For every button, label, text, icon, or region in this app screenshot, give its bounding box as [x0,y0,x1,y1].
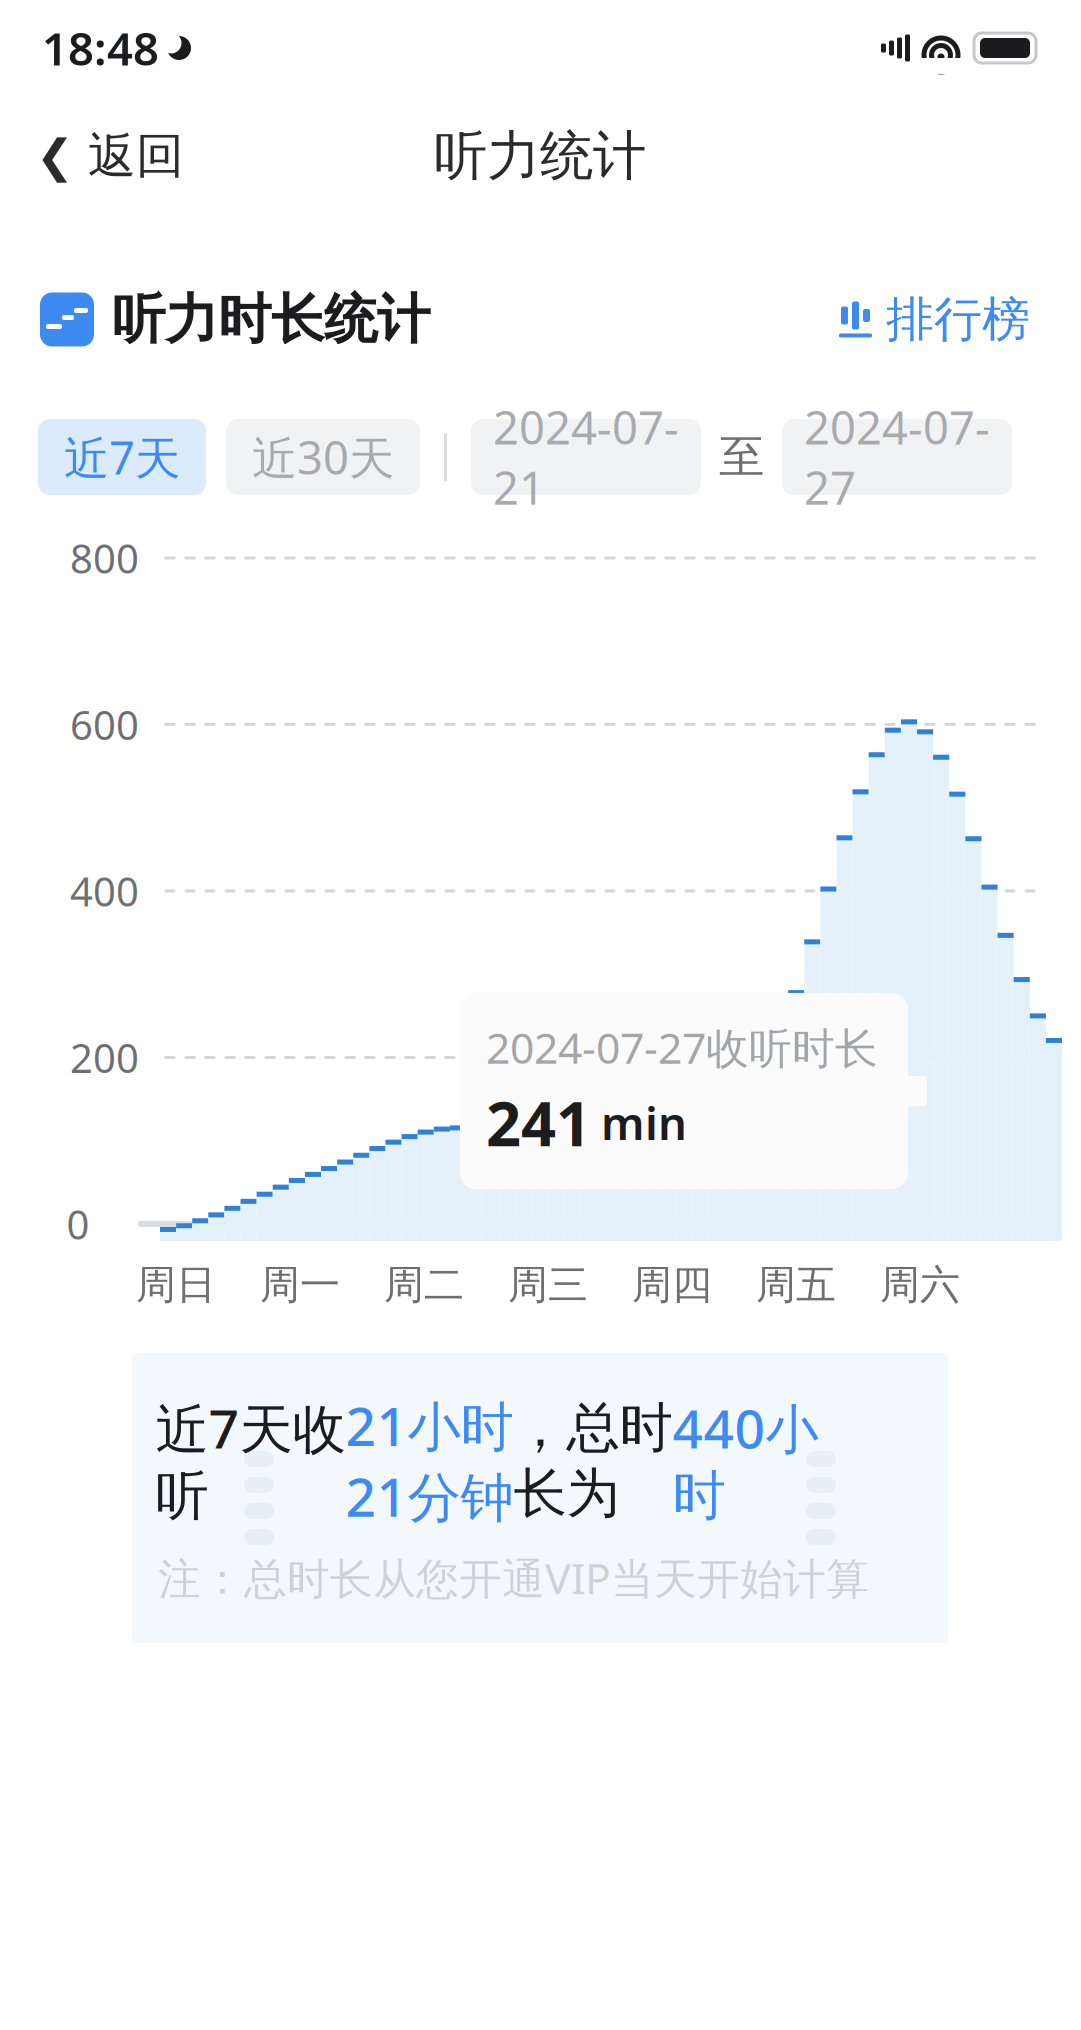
staticText: 440小时 [672,1392,818,1529]
staticText: 200 [70,1031,139,1084]
staticText: 听力时长统计 [112,287,430,352]
staticText: 18:48 [42,18,159,78]
staticText: 2024-07-21 [493,397,679,517]
staticText: 周三 [508,1260,588,1309]
button[interactable]: 近7天 [38,419,206,495]
staticText: 周二 [384,1260,464,1309]
button[interactable]: 近30天 [226,419,420,495]
staticText: 排行榜 [886,290,1030,349]
button[interactable]: 2024-07-21 [471,419,701,495]
staticText: 周六 [880,1260,960,1309]
staticText: min [601,1092,687,1152]
staticText: ❮ [36,130,74,182]
staticText: 周五 [756,1260,836,1309]
button[interactable]: ❮ [12,112,208,199]
staticText: 周日 [136,1260,216,1309]
staticText: 800 [70,531,139,584]
staticText: 400 [70,864,139,917]
staticText: 241 [486,1082,591,1163]
button[interactable]: 2024-07-27 [782,419,1012,495]
staticText: 近30天 [252,427,394,487]
staticText: 周一 [260,1260,340,1309]
staticText: 至 [719,429,764,485]
staticText: 2024-07-27 [804,397,990,517]
staticText: 近7天收听 [155,1392,345,1529]
staticText: 近7天 [64,427,180,487]
staticText: 注：总时长从您开通VIP当天开始计算 [158,1549,869,1606]
staticText: 周四 [632,1260,712,1309]
staticText: 2024-07-27收听时长 [486,1019,878,1076]
staticText: 听力统计 [434,123,646,189]
staticText: 21小时21分钟 [345,1390,513,1531]
button[interactable]: 排行榜 [829,278,1040,361]
staticText: ，总时长为 [513,1395,672,1526]
staticText: 返回 [88,126,184,185]
staticText: 600 [70,698,139,751]
staticText: 0 [66,1197,89,1250]
